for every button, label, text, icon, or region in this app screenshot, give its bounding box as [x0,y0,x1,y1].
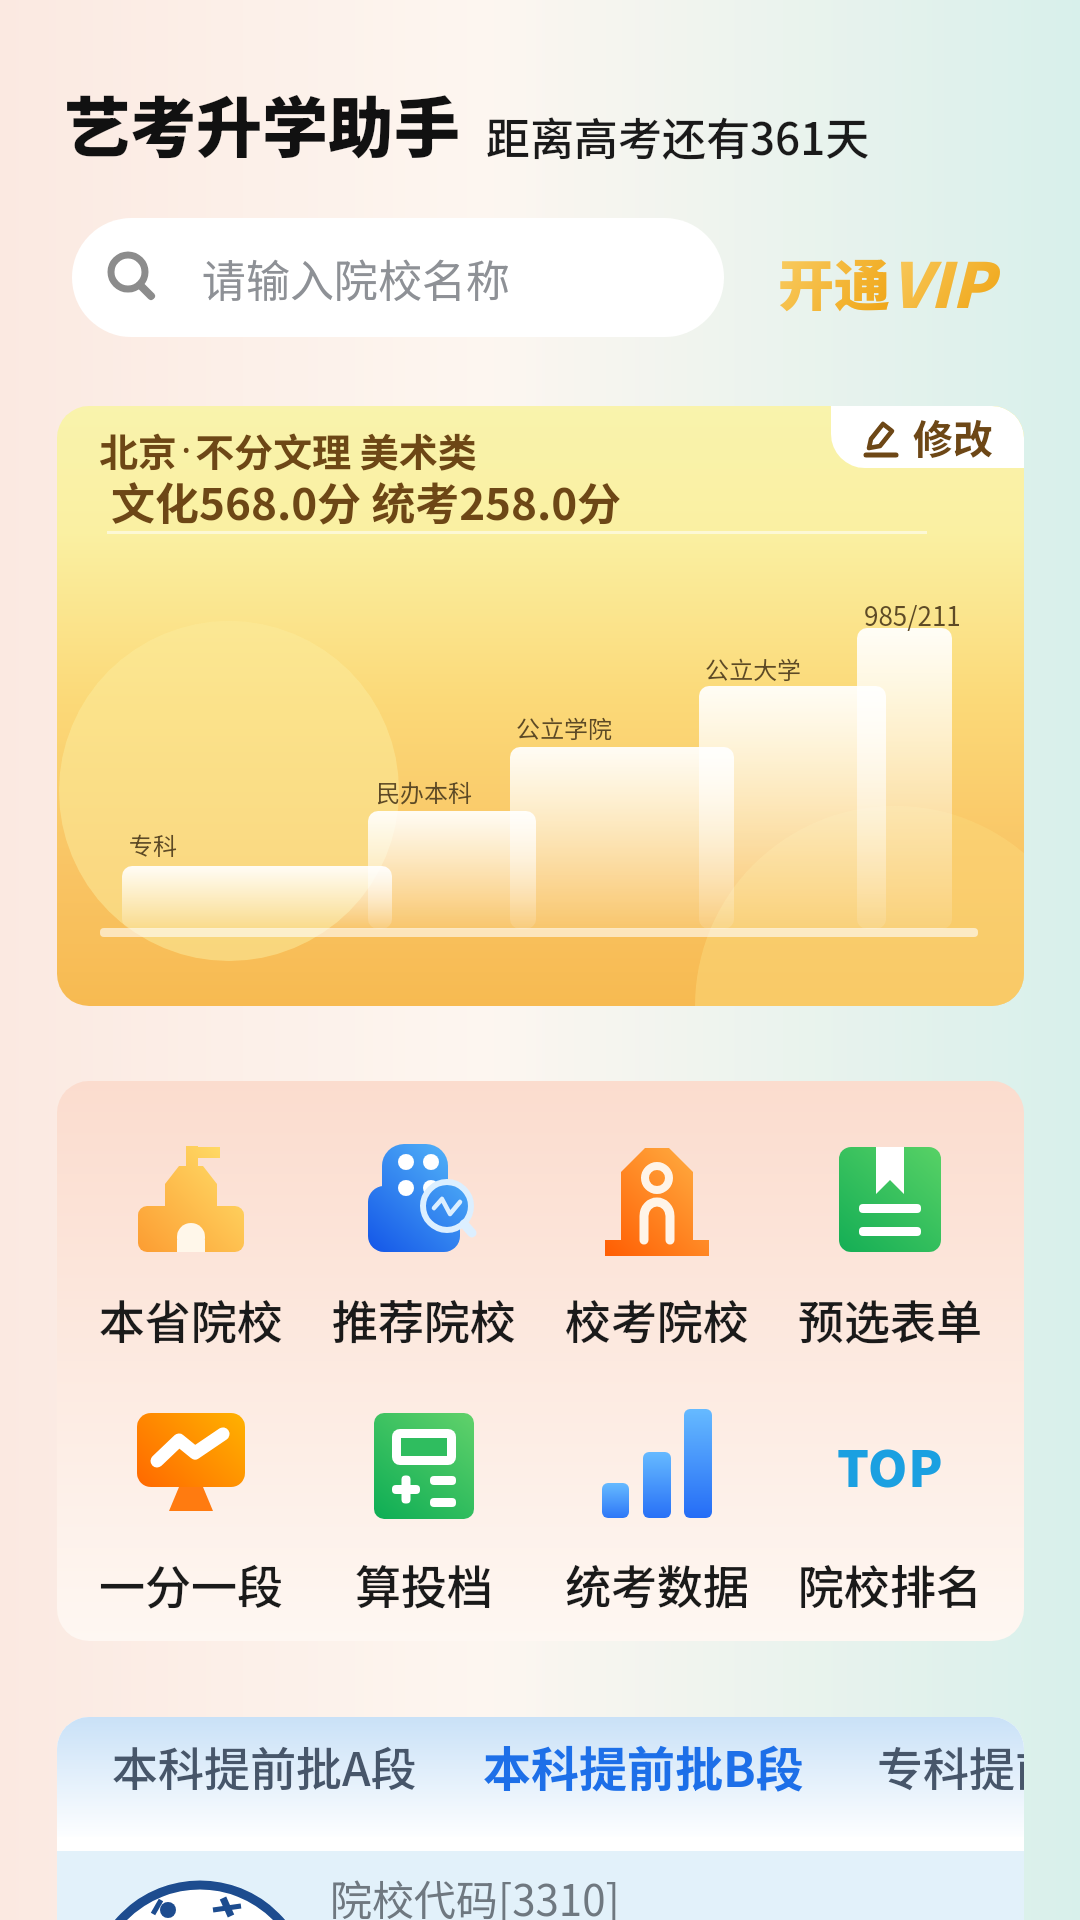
staticText: 公立学院 [516,710,612,745]
button[interactable]: TOP [773,1409,1006,1618]
button[interactable]: 专科提前批 [877,1733,1024,1800]
staticText: 预选表单 [798,1286,982,1353]
staticText: 不分文理 美术类 [195,422,477,478]
button[interactable]: 本科提前批A段 [112,1733,417,1800]
button[interactable]: 统考数据 [540,1409,773,1618]
staticText: 统考数据 [565,1551,749,1618]
staticText: 院校代码[3310] [330,1867,620,1920]
button[interactable]: 开通 [778,236,995,326]
staticText: · [181,422,192,475]
staticText: 距离高考还有361天 [486,104,870,168]
button[interactable]: 本科提前批B段 [483,1731,804,1801]
staticText: 985/211 [864,596,961,634]
staticText: 艺考升学助手 [64,75,460,171]
staticText: 请输入院校名称 [202,246,510,310]
staticText: 一分一段 [99,1551,283,1618]
button[interactable]: 本省院校 [75,1144,307,1353]
staticText: 院校排名 [798,1551,982,1618]
button[interactable]: 一分一段 [75,1409,307,1618]
staticText: 专科 [129,827,177,862]
staticText: 本省院校 [99,1286,283,1353]
button[interactable]: 校考院校 [540,1144,773,1353]
staticText: 公立大学 [705,651,801,686]
staticText: VIP [890,236,995,326]
staticText: TOP [837,1429,944,1501]
staticText: 校考院校 [565,1286,749,1353]
staticText: 算投档 [355,1551,493,1618]
staticText: 开通 [778,241,890,322]
button[interactable]: 预选表单 [773,1144,1006,1353]
staticText: 修改 [913,408,993,466]
button[interactable]: 推荐院校 [307,1144,540,1353]
button[interactable]: 请输入院校名称 [72,218,724,337]
button[interactable]: 算投档 [307,1409,540,1618]
button[interactable]: 修改 [831,406,1024,468]
staticText: 文化568.0分 统考258.0分 [111,469,622,533]
staticText: 北京 [99,422,178,478]
staticText: 推荐院校 [332,1286,516,1353]
staticText: 民办本科 [376,774,472,809]
